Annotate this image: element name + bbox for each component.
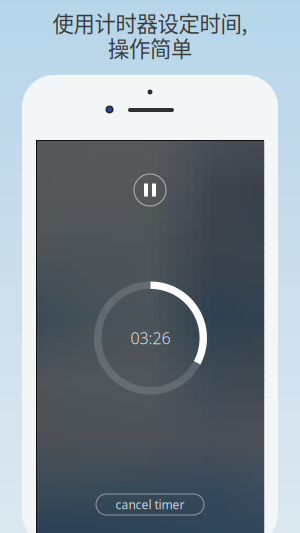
staticText: 操作简单 [108, 32, 192, 63]
button[interactable]: cancel timer [96, 494, 204, 515]
button[interactable]: Pause timer [134, 174, 166, 206]
staticText: 使用计时器设定时间, [52, 7, 247, 38]
staticText: 03:26 [130, 327, 170, 349]
staticText: cancel timer [115, 496, 184, 512]
